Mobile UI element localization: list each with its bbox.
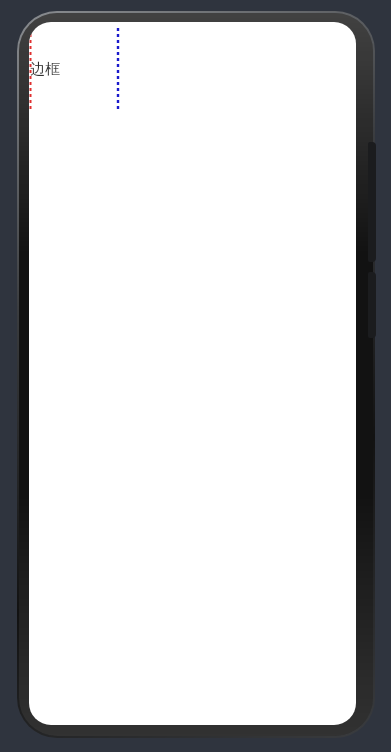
button[interactable]: 边框 <box>30 60 60 79</box>
